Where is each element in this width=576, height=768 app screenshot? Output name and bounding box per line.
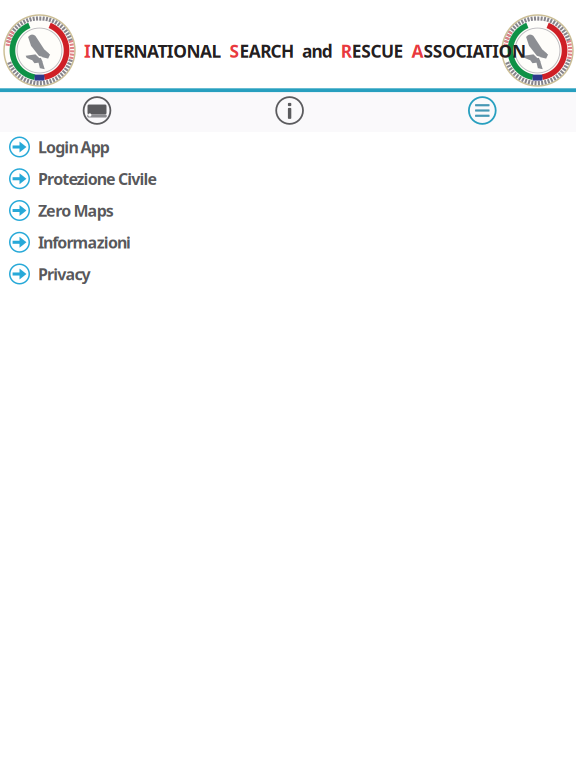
button[interactable]: Menu xyxy=(462,90,502,130)
button[interactable]: Protezione Civile xyxy=(0,166,300,192)
button[interactable]: Informazioni xyxy=(0,229,300,255)
button[interactable]: Zero Maps xyxy=(0,197,300,223)
staticText: and xyxy=(302,39,333,62)
button[interactable]: Login App xyxy=(0,134,300,160)
staticText: Protezione Civile xyxy=(38,168,158,189)
staticText: S xyxy=(229,39,239,62)
staticText: R xyxy=(341,39,352,62)
staticText: SSOCIATION xyxy=(423,39,526,62)
staticText: Privacy xyxy=(38,263,91,285)
staticText: Informazioni xyxy=(38,232,131,253)
staticText: A xyxy=(411,39,423,62)
button[interactable]: Webcam xyxy=(77,90,117,130)
staticText: Zero Maps xyxy=(38,200,114,221)
button[interactable]: Privacy xyxy=(0,261,300,287)
staticText: Login App xyxy=(38,136,110,158)
staticText: NTERNATIONAL xyxy=(91,39,221,62)
button[interactable]: Information xyxy=(270,90,310,130)
staticText: ESCUE xyxy=(352,39,403,62)
staticText: I xyxy=(84,39,91,62)
staticText: EARCH xyxy=(239,39,294,62)
